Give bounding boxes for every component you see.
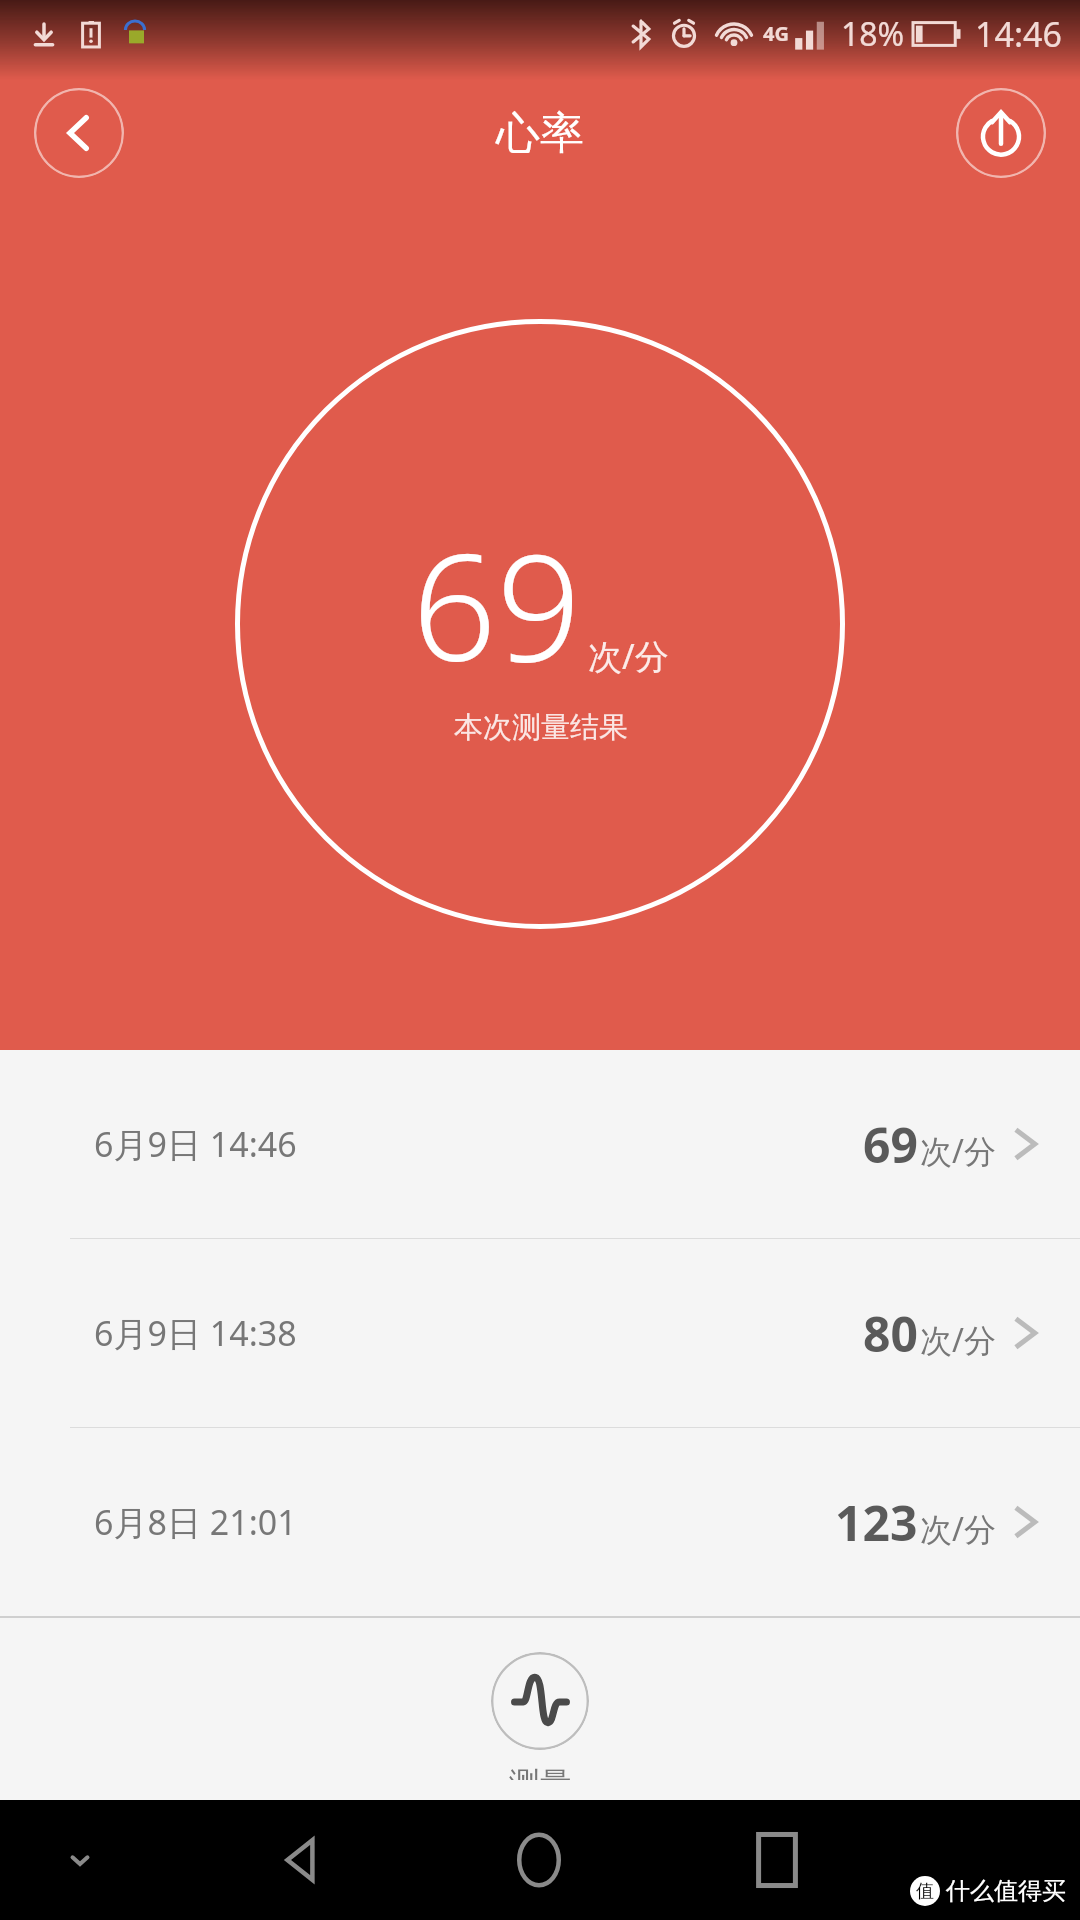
button[interactable]: Back	[34, 88, 124, 178]
staticText: 80	[863, 1301, 918, 1366]
button[interactable]: 测量	[0, 1618, 1080, 1800]
staticText: 值	[916, 1880, 934, 1903]
staticText: 次/分	[920, 1318, 996, 1362]
staticText: 次/分	[920, 1129, 996, 1173]
staticText: 123	[835, 1490, 918, 1555]
button[interactable]: Hide	[40, 1820, 120, 1900]
staticText: 69	[412, 503, 582, 705]
button[interactable]: Back	[247, 1805, 357, 1915]
button[interactable]: 6月9日 14:38	[0, 1239, 1080, 1427]
button[interactable]: Recents	[722, 1805, 832, 1915]
button[interactable]: 6月9日 14:46	[0, 1050, 1080, 1238]
staticText: 测量	[509, 1764, 571, 1780]
staticText: 6月8日 21:01	[94, 1499, 297, 1545]
staticText: 心率	[496, 106, 584, 161]
button[interactable]: Share	[956, 88, 1046, 178]
staticText: 18%	[841, 12, 905, 56]
staticText: 69	[863, 1112, 918, 1177]
other: Details	[1014, 1502, 1040, 1542]
staticText: 4G	[763, 20, 789, 47]
other: Details	[1014, 1124, 1040, 1164]
staticText: 次/分	[920, 1507, 996, 1551]
other: Details	[1014, 1313, 1040, 1353]
staticText: 什么值得买	[946, 1876, 1066, 1906]
staticText: 次/分	[588, 633, 669, 679]
staticText: 6月9日 14:38	[94, 1310, 297, 1356]
staticText: 本次测量结果	[454, 709, 628, 746]
staticText: 6月9日 14:46	[94, 1121, 297, 1167]
button[interactable]: 6月8日 21:01	[0, 1428, 1080, 1616]
staticText: 14:46	[975, 11, 1062, 57]
button[interactable]: Home	[484, 1805, 594, 1915]
